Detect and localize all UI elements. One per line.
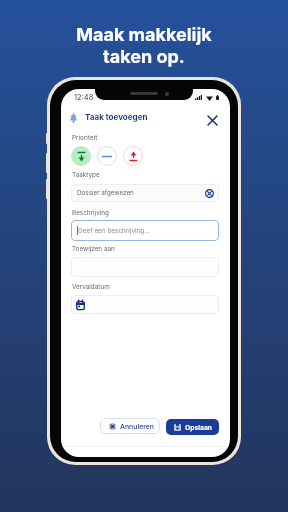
staticText: 12:48 bbox=[74, 93, 94, 102]
button[interactable]: Geef een beschrijving... bbox=[71, 220, 219, 241]
staticText: Opslaan bbox=[185, 423, 212, 431]
button[interactable]: Annuleren bbox=[100, 418, 160, 434]
staticText: Toewijzen aan bbox=[72, 245, 115, 253]
staticText: Maak makkelijk bbox=[76, 24, 212, 46]
button[interactable]: Opslaan bbox=[166, 419, 219, 435]
staticText: Beschrijving bbox=[72, 209, 109, 217]
button[interactable]: Hoge prioriteit bbox=[123, 146, 143, 166]
button[interactable]: Normale prioriteit bbox=[97, 146, 117, 166]
button[interactable]: Toewijzen aan bbox=[71, 257, 219, 277]
staticText: Dossier afgewezen bbox=[77, 189, 134, 197]
staticText: Taaktype bbox=[72, 171, 100, 179]
staticText: taken op. bbox=[103, 46, 185, 68]
staticText: Vervaldatum bbox=[72, 283, 110, 291]
button[interactable]: Dossier afgewezen bbox=[71, 184, 219, 202]
button[interactable]: Lage prioriteit bbox=[71, 146, 91, 166]
staticText: Geef een beschrijving... bbox=[78, 227, 150, 235]
button[interactable]: Sluiten bbox=[204, 112, 220, 128]
staticText: Taak toevoegen bbox=[85, 112, 148, 122]
staticText: Prioriteit bbox=[72, 134, 98, 142]
staticText: Annuleren bbox=[120, 422, 154, 430]
button[interactable]: Vervaldatum kiezen bbox=[71, 295, 219, 314]
